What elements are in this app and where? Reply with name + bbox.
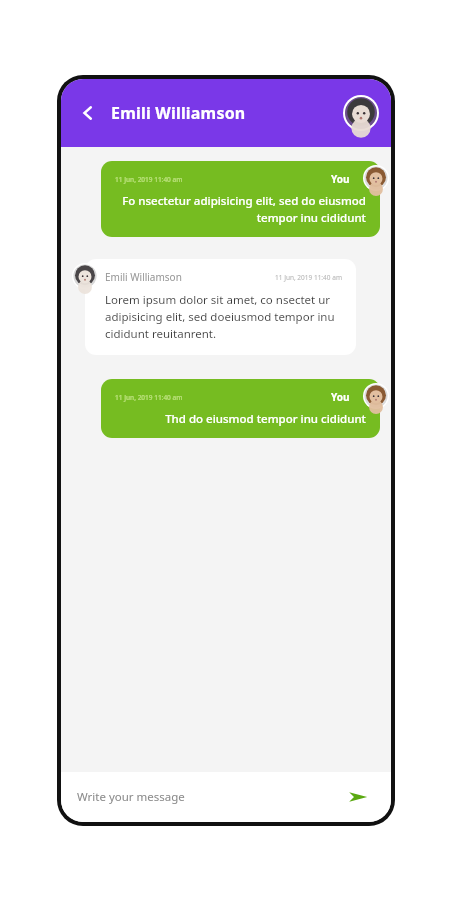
staticText: 11 Jun, 2019 11:40 am — [275, 273, 342, 282]
button[interactable]: Contact profile — [343, 95, 379, 131]
button[interactable]: Write your message — [77, 772, 341, 822]
staticText: 11 Jun, 2019 11:40 am — [115, 393, 183, 402]
staticText: Fo nsectetur adipisicing elit, sed do ei… — [115, 193, 366, 226]
staticText: Write your message — [77, 789, 185, 805]
button[interactable]: Back — [71, 96, 105, 130]
staticText: Emili Williamson — [105, 270, 182, 284]
staticText: Thd do eiusmod tempor inu cididunt — [115, 411, 366, 427]
staticText: Emili Williamson — [111, 102, 246, 124]
button[interactable]: 11 Jun, 2019 11:40 am — [101, 161, 380, 237]
staticText: You — [331, 172, 350, 186]
staticText: You — [331, 390, 350, 404]
staticText: 11 Jun, 2019 11:40 am — [115, 175, 183, 184]
staticText: Lorem ipsum dolor sit amet, co nsectet u… — [105, 292, 342, 342]
button[interactable]: Send — [341, 780, 375, 814]
button[interactable]: Emili Williamson — [85, 259, 356, 355]
button[interactable]: 11 Jun, 2019 11:40 am — [101, 379, 380, 438]
